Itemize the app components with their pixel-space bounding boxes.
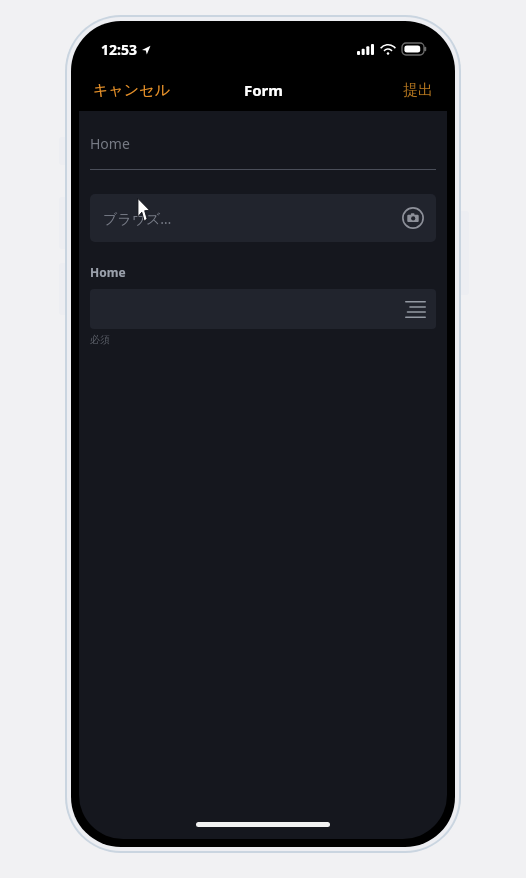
staticText: ブラウズ… [103, 209, 172, 228]
staticText: Home [90, 264, 126, 280]
staticText: 必須 [90, 333, 110, 346]
staticText: 12:53 [101, 40, 137, 59]
button[interactable]: Choose option [90, 289, 436, 329]
staticText: Home [90, 134, 130, 153]
staticText: Form [244, 80, 283, 100]
button[interactable]: ブラウズ… [90, 194, 436, 242]
button[interactable]: Choose option [404, 298, 426, 320]
button[interactable]: キャンセル [79, 75, 180, 106]
button[interactable]: Take photo [401, 206, 425, 230]
button[interactable]: 提出 [393, 75, 447, 106]
button[interactable]: Home [90, 132, 436, 172]
staticText: 提出 [403, 81, 433, 100]
staticText: キャンセル [93, 81, 170, 100]
